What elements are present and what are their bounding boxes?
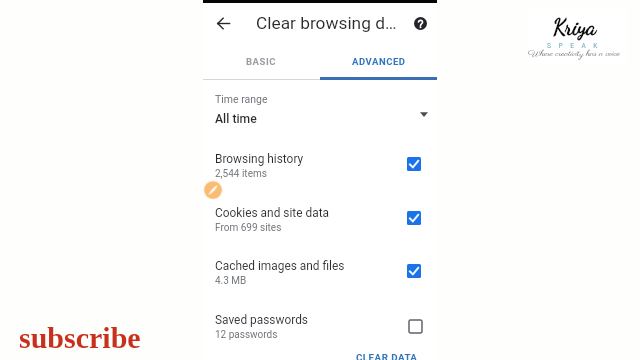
- staticText: CLEAR DATA: [356, 352, 418, 360]
- staticText: subscribe: [19, 321, 141, 354]
- button[interactable]: Cached images and files: [203, 251, 437, 301]
- staticText: Time range: [215, 93, 268, 105]
- staticText: S P E A K: [547, 42, 601, 50]
- button[interactable]: Checked: Cached images and files: [399, 256, 429, 286]
- staticText: All time: [215, 112, 257, 126]
- staticText: Clear browsing d…: [256, 13, 397, 33]
- staticText: From 699 sites: [215, 222, 282, 234]
- button[interactable]: Cookies and site data: [203, 198, 437, 248]
- staticText: Kriya: [553, 14, 597, 40]
- button[interactable]: Unchecked: Saved passwords: [399, 310, 429, 340]
- staticText: ADVANCED: [352, 56, 406, 67]
- staticText: 4.3 MB: [215, 275, 247, 287]
- button[interactable]: subscribe: [19, 321, 141, 354]
- staticText: Cached images and files: [215, 259, 345, 273]
- staticText: Where creativity has a voice: [528, 48, 620, 60]
- staticText: BASIC: [246, 56, 277, 67]
- button[interactable]: ADVANCED: [320, 46, 437, 77]
- button[interactable]: Time range: [203, 86, 437, 128]
- button[interactable]: Checked: Browsing history: [399, 149, 429, 179]
- button[interactable]: Help: [409, 12, 431, 34]
- button[interactable]: CLEAR DATA: [356, 352, 418, 360]
- button[interactable]: Browsing history: [203, 144, 437, 194]
- staticText: 2,544 items: [215, 168, 267, 180]
- staticText: Saved passwords: [215, 313, 308, 327]
- button[interactable]: Back: [211, 11, 236, 36]
- staticText: 12 passwords: [215, 329, 278, 341]
- button[interactable]: BASIC: [203, 46, 320, 77]
- button[interactable]: Checked: Cookies and site data: [399, 203, 429, 233]
- staticText: Browsing history: [215, 152, 304, 166]
- button[interactable]: Saved passwords: [203, 305, 437, 355]
- staticText: Cookies and site data: [215, 206, 330, 220]
